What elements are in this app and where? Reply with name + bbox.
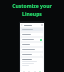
button[interactable]: [21, 53, 43, 56]
staticText: Lineups: [22, 11, 42, 18]
button[interactable]: Lineups: [27, 71, 31, 72]
button[interactable]: [21, 58, 43, 71]
button[interactable]: [21, 33, 43, 36]
button[interactable]: [21, 38, 43, 41]
button[interactable]: [21, 28, 43, 31]
staticText: Customize your: [12, 3, 52, 10]
button[interactable]: [21, 48, 43, 51]
button[interactable]: Profile: [38, 71, 42, 72]
button[interactable]: Stats: [33, 71, 37, 72]
button[interactable]: Back: [19, 21, 45, 72]
button[interactable]: [21, 43, 43, 46]
button[interactable]: Home: [22, 71, 26, 72]
button[interactable]: Back: [21, 24, 23, 26]
